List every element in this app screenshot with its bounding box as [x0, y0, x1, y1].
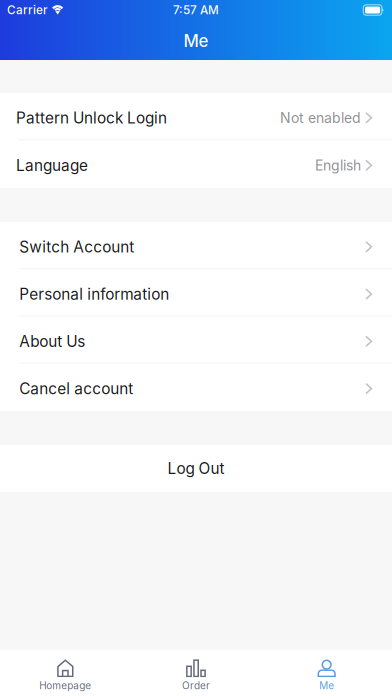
button[interactable]: Pattern Unlock Login [0, 93, 392, 140]
button[interactable]: Me [261, 649, 392, 696]
staticText: Me [319, 679, 334, 692]
button[interactable]: Language [0, 140, 392, 188]
button[interactable]: Personal information [0, 269, 392, 316]
staticText: Language [16, 156, 88, 175]
staticText: Order [182, 679, 210, 692]
staticText: Switch Account [19, 237, 134, 256]
staticText: Personal information [19, 285, 169, 303]
button[interactable]: Order [131, 649, 261, 696]
staticText: Me [183, 31, 208, 51]
staticText: About Us [19, 332, 85, 351]
staticText: Pattern Unlock Login [16, 108, 167, 127]
staticText: Homepage [39, 679, 91, 692]
button[interactable]: Switch Account [0, 222, 392, 269]
staticText: Log Out [167, 459, 224, 478]
button[interactable]: Cancel account [0, 364, 392, 411]
staticText: 7:57 AM [173, 3, 219, 17]
button[interactable]: About Us [0, 316, 392, 364]
staticText: Cancel account [19, 379, 133, 398]
staticText: English [315, 157, 361, 174]
button[interactable]: Log Out [0, 445, 392, 492]
staticText: Not enabled [280, 109, 361, 126]
button[interactable]: Homepage [0, 649, 131, 696]
staticText: Carrier [7, 3, 48, 17]
